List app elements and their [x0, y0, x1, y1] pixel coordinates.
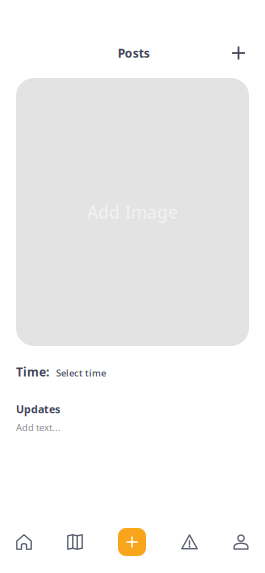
button[interactable]: Profile [233, 528, 249, 556]
button[interactable]: Add text... [16, 421, 61, 433]
button[interactable]: Select time [56, 367, 106, 379]
staticText: Select time [56, 367, 106, 379]
button[interactable]: Explore [67, 528, 83, 556]
staticText: Updates [16, 402, 60, 416]
button[interactable]: Create post [118, 528, 146, 556]
button[interactable]: Alerts [181, 528, 198, 556]
staticText: Add Image [87, 200, 178, 223]
button[interactable]: Home [16, 528, 32, 556]
staticText: Posts [118, 45, 150, 61]
staticText: Add text... [16, 421, 61, 433]
staticText: Time: [16, 364, 49, 380]
button[interactable]: Add post [225, 40, 251, 66]
